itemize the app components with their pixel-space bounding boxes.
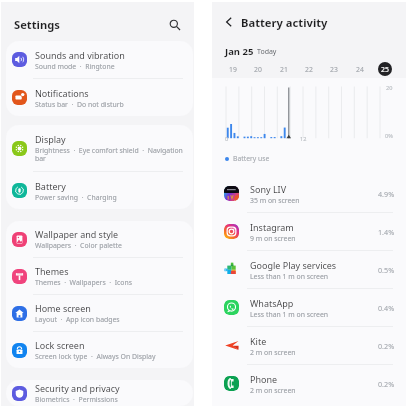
- staticText: Battery use: [233, 154, 270, 163]
- button[interactable]: Display: [6, 125, 193, 171]
- staticText: 19: [229, 65, 237, 74]
- staticText: Sounds and vibration: [35, 49, 125, 61]
- staticText: 9 m on screen: [250, 234, 296, 243]
- staticText: 35 m on screen: [250, 196, 300, 205]
- staticText: 24: [356, 65, 364, 74]
- staticText: 2 m on screen: [250, 386, 296, 395]
- staticText: 0%: [385, 132, 393, 140]
- staticText: Themes · Wallpapers · Icons: [35, 278, 133, 287]
- staticText: Sony LIV: [250, 183, 287, 195]
- staticText: 21: [280, 65, 288, 74]
- staticText: Settings: [14, 17, 60, 32]
- button[interactable]: 24: [353, 62, 367, 76]
- staticText: Home screen: [35, 302, 91, 314]
- staticText: 0: [225, 135, 229, 143]
- button[interactable]: Sony LIV: [212, 175, 406, 212]
- staticText: Sound mode · Ringtone: [35, 62, 115, 71]
- staticText: Layout · App icon badges: [35, 315, 120, 324]
- button[interactable]: Kite: [212, 327, 406, 364]
- button[interactable]: Sounds and vibration: [6, 41, 193, 78]
- button[interactable]: 21: [277, 62, 291, 76]
- staticText: Kite: [250, 335, 267, 347]
- staticText: 1.4%: [378, 227, 395, 237]
- staticText: Battery: [35, 180, 66, 192]
- button[interactable]: Themes: [6, 258, 193, 294]
- button[interactable]: 23: [327, 62, 341, 76]
- staticText: 23: [330, 65, 338, 74]
- staticText: Wallpaper and style: [35, 228, 119, 240]
- button[interactable]: Back: [221, 14, 237, 30]
- staticText: Phone: [250, 373, 278, 385]
- staticText: 0.5%: [378, 265, 395, 275]
- button[interactable]: Battery: [6, 172, 193, 209]
- staticText: 20: [254, 65, 262, 74]
- button[interactable]: 20: [251, 62, 265, 76]
- staticText: Brightness · Eye comfort shield · Naviga…: [35, 146, 192, 163]
- button[interactable]: Search: [166, 16, 184, 34]
- staticText: Lock screen: [35, 339, 85, 351]
- button[interactable]: 22: [302, 62, 316, 76]
- staticText: Status bar · Do not disturb: [35, 100, 124, 109]
- staticText: 25: [381, 65, 389, 74]
- staticText: 12: [300, 135, 307, 143]
- button[interactable]: Security and privacy: [6, 380, 193, 406]
- staticText: Screen lock type · Always On Display: [35, 352, 156, 361]
- button[interactable]: Lock screen: [6, 332, 193, 368]
- button[interactable]: Google Play services: [212, 251, 406, 288]
- button[interactable]: 19: [226, 62, 240, 76]
- staticText: Google Play services: [250, 259, 337, 271]
- button[interactable]: WhatsApp: [212, 289, 406, 326]
- staticText: 2 m on screen: [250, 348, 296, 357]
- staticText: Themes: [35, 265, 69, 277]
- staticText: Security and privacy: [35, 382, 120, 394]
- staticText: 4.9%: [378, 189, 395, 199]
- staticText: Notifications: [35, 87, 89, 99]
- staticText: 0.2%: [378, 341, 395, 351]
- staticText: 22: [305, 65, 313, 74]
- staticText: Biometrics · Permissions: [35, 395, 118, 404]
- staticText: 0.4%: [378, 303, 395, 313]
- button[interactable]: Home screen: [6, 295, 193, 331]
- button[interactable]: Phone: [212, 365, 406, 402]
- button[interactable]: Instagram: [212, 213, 406, 250]
- staticText: Battery activity: [241, 15, 328, 30]
- staticText: Less than 1 m on screen: [250, 272, 329, 281]
- staticText: Today: [257, 47, 277, 57]
- staticText: 0.2%: [378, 379, 395, 389]
- staticText: Instagram: [250, 221, 294, 233]
- button[interactable]: Notifications: [6, 79, 193, 116]
- staticText: Wallpapers · Color palette: [35, 241, 122, 250]
- staticText: WhatsApp: [250, 297, 294, 309]
- staticText: Power saving · Charging: [35, 193, 117, 202]
- button[interactable]: Wallpaper and style: [6, 221, 193, 257]
- button[interactable]: 25: [378, 62, 392, 76]
- staticText: Less than 1 m on screen: [250, 310, 329, 319]
- staticText: 20: [386, 84, 393, 92]
- staticText: Display: [35, 133, 66, 145]
- staticText: Jan 25: [225, 45, 254, 58]
